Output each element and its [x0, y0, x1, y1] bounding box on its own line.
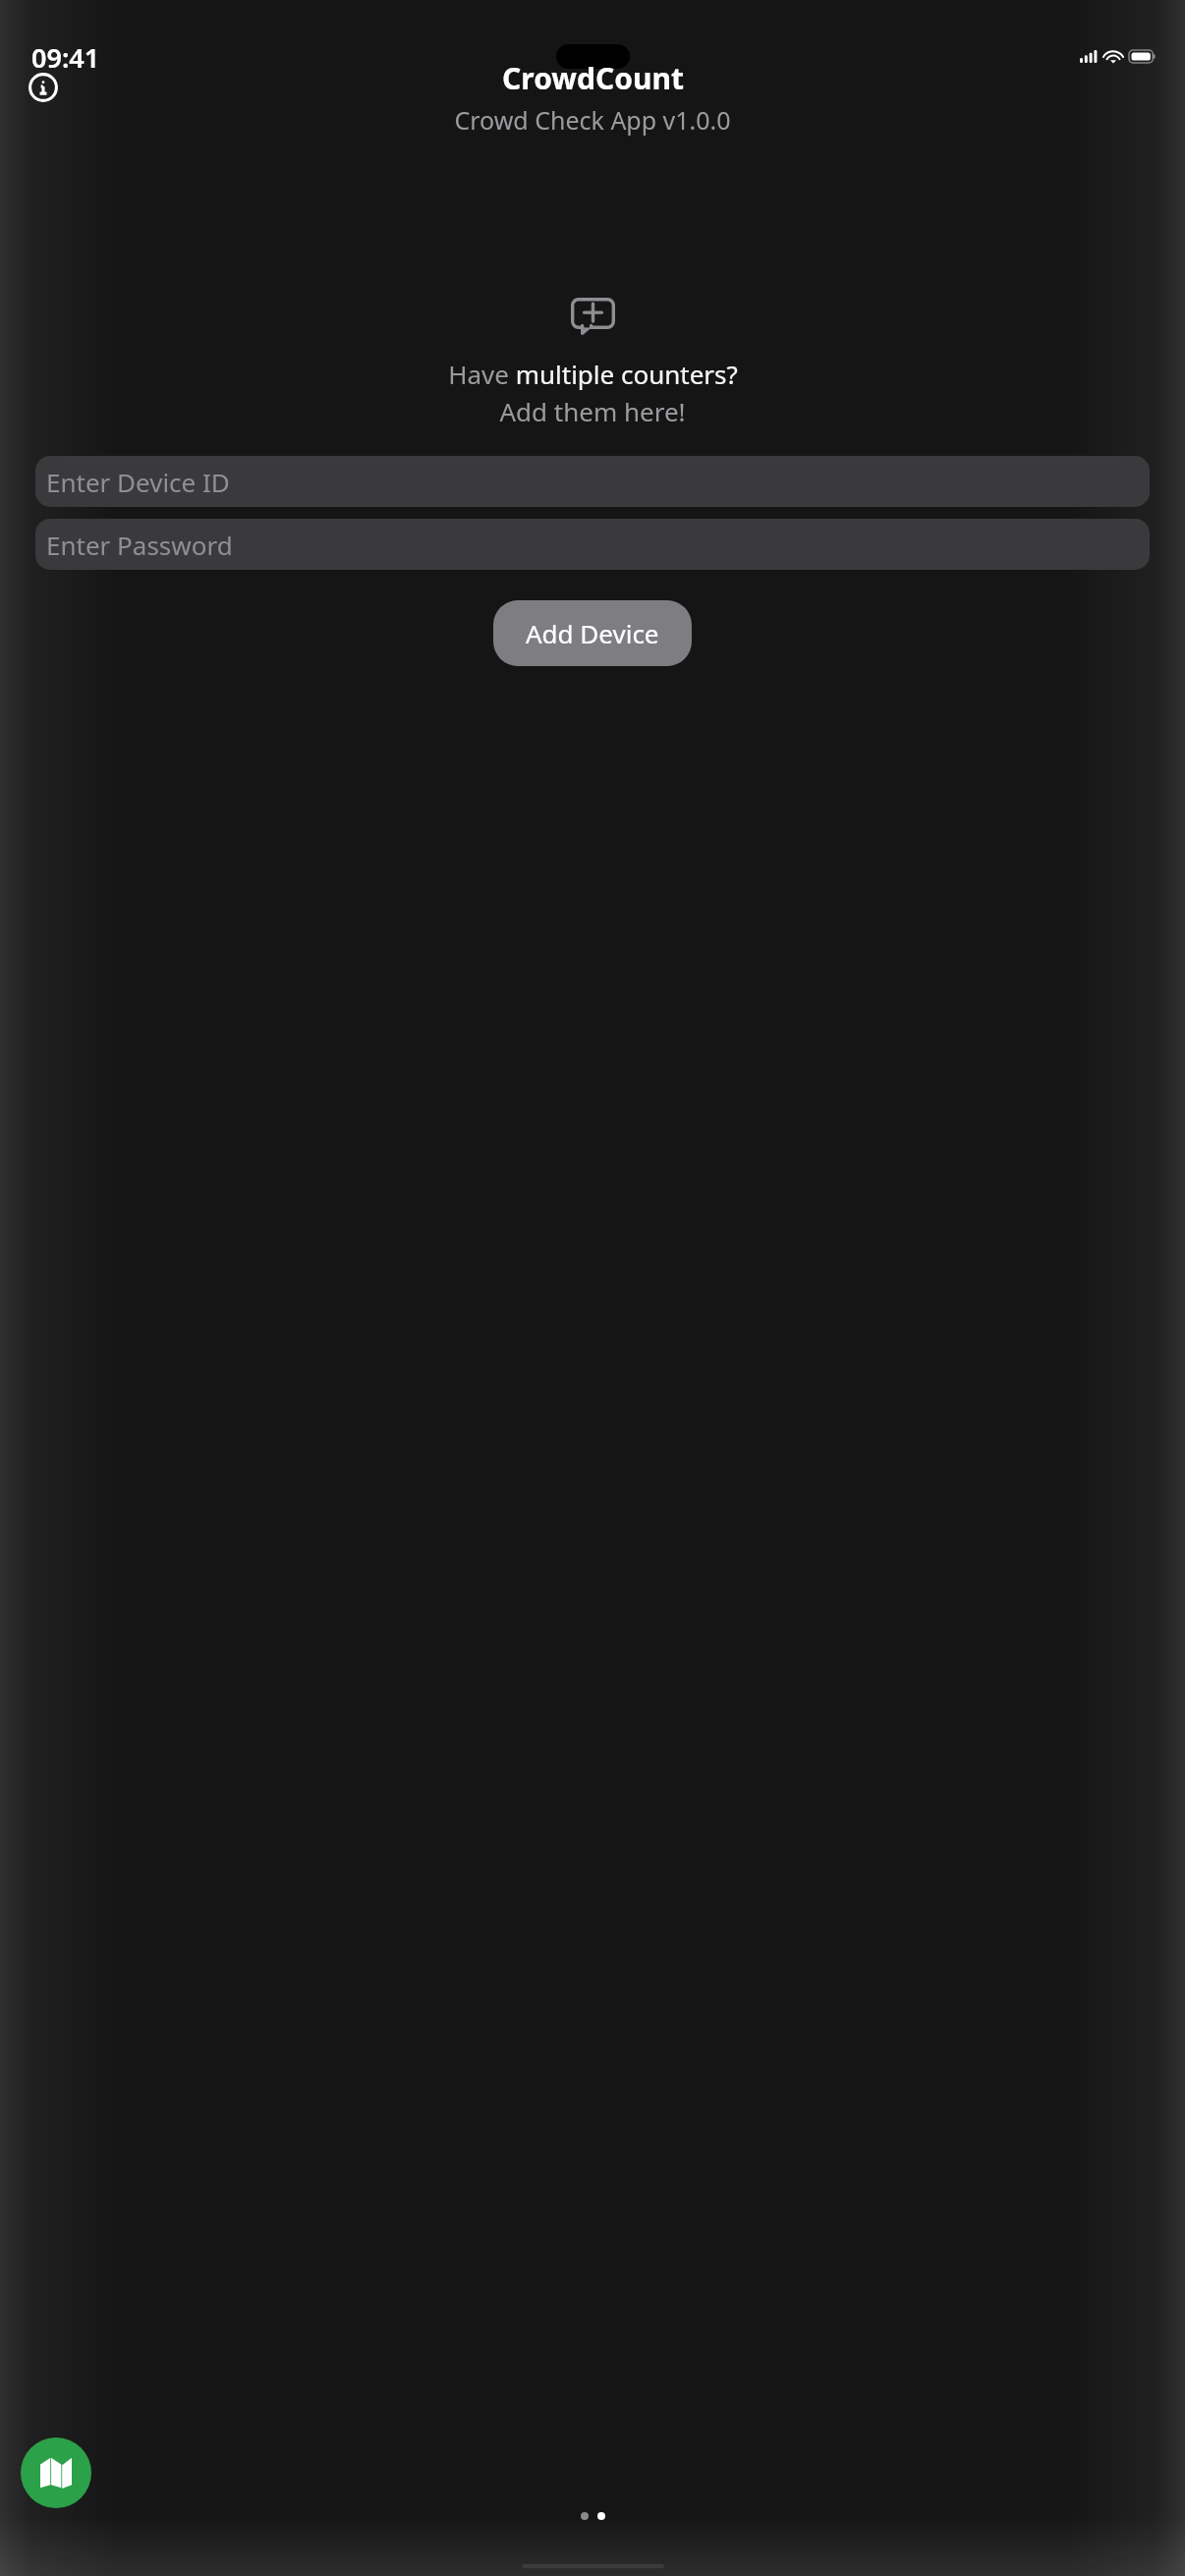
staticText: Have multiple counters? — [448, 357, 738, 391]
button[interactable]: Map — [21, 2437, 91, 2508]
staticText: Crowd Check App v1.0.0 — [454, 103, 731, 137]
button[interactable]: Add Device — [493, 600, 692, 666]
staticText: CrowdCount — [502, 58, 684, 98]
button[interactable]: Enter Password — [35, 519, 1150, 570]
button[interactable]: Enter Device ID — [35, 456, 1150, 507]
staticText: Add them here! — [499, 394, 686, 428]
staticText: Enter Device ID — [46, 465, 230, 499]
button[interactable]: Info — [22, 66, 65, 109]
staticText: 09:41 — [31, 39, 100, 76]
staticText: Add Device — [526, 616, 659, 650]
staticText: Enter Password — [46, 528, 233, 562]
